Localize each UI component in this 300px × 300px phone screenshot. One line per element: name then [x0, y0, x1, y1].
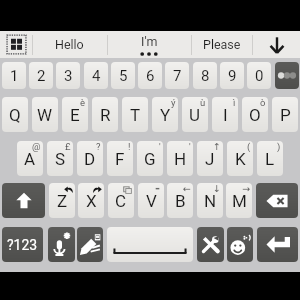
staticText: N — [204, 191, 217, 211]
button[interactable]: 3 — [56, 62, 80, 89]
staticText: 7 — [173, 67, 182, 85]
button[interactable]: R — [92, 97, 118, 132]
staticText: P — [280, 105, 291, 125]
button[interactable]: Hide keyboard — [252, 31, 300, 58]
button[interactable]: Enter — [257, 227, 298, 262]
button[interactable]: G — [137, 141, 163, 176]
button[interactable]: B — [167, 183, 193, 218]
staticText: £ — [65, 141, 71, 152]
button[interactable]: ?123 — [2, 227, 43, 262]
staticText: D — [84, 149, 96, 169]
button[interactable]: Hello — [32, 31, 107, 58]
staticText: @ — [32, 141, 41, 152]
button[interactable]: V — [138, 183, 164, 218]
button[interactable]: 1 — [2, 62, 26, 89]
staticText: 3 — [64, 67, 73, 85]
staticText: è — [80, 97, 86, 108]
button[interactable]: Z — [49, 183, 75, 218]
button[interactable]: 6 — [138, 62, 162, 89]
staticText: X — [86, 191, 97, 211]
staticText: 0 — [255, 67, 264, 85]
button[interactable]: 9 — [220, 62, 244, 89]
button[interactable]: C — [108, 183, 134, 218]
button[interactable]: A — [17, 141, 43, 176]
staticText: Q — [9, 105, 21, 125]
staticText: ? — [96, 141, 101, 152]
staticText: Y — [160, 105, 171, 125]
button[interactable]: 8 — [193, 62, 217, 89]
staticText: A — [24, 149, 36, 169]
button[interactable]: U — [182, 97, 208, 132]
staticText: ò — [260, 97, 266, 108]
staticText: ?123 — [7, 237, 38, 253]
staticText: B — [175, 191, 186, 211]
staticText: ' — [159, 141, 161, 152]
staticText: U — [189, 105, 201, 125]
staticText: T — [130, 105, 141, 125]
staticText: ! — [128, 141, 131, 152]
staticText: 1 — [10, 67, 19, 85]
staticText: → — [242, 183, 250, 194]
button[interactable]: N — [197, 183, 223, 218]
button[interactable]: Backspace — [256, 183, 298, 218]
staticText: W — [37, 105, 53, 125]
staticText: ( — [247, 141, 251, 152]
staticText: E — [70, 105, 80, 125]
button[interactable]: I'm — [107, 31, 191, 58]
button[interactable]: Voice input — [48, 227, 75, 262]
button[interactable]: Please — [191, 31, 252, 58]
button[interactable]: 0 — [247, 62, 271, 89]
button[interactable]: Shift — [2, 183, 45, 218]
button[interactable]: K — [227, 141, 253, 176]
staticText: ý — [171, 97, 176, 108]
staticText: M — [232, 191, 247, 211]
button[interactable]: D — [77, 141, 103, 176]
button[interactable]: Space — [107, 227, 193, 262]
button[interactable]: Emoji — [227, 227, 253, 262]
staticText: ì — [233, 97, 236, 108]
button[interactable]: 5 — [111, 62, 135, 89]
button[interactable]: J — [197, 141, 223, 176]
button[interactable]: L — [257, 141, 283, 176]
button[interactable]: 7 — [165, 62, 189, 89]
staticText: ↓ — [213, 183, 221, 194]
staticText: F — [115, 149, 125, 169]
button[interactable]: Q — [2, 97, 28, 132]
button[interactable]: Y — [152, 97, 178, 132]
button[interactable]: 2 — [29, 62, 53, 89]
staticText: L — [265, 149, 275, 169]
button[interactable]: Handwriting — [77, 227, 103, 262]
button[interactable]: O — [242, 97, 268, 132]
staticText: C — [115, 191, 127, 211]
staticText: O — [249, 105, 261, 125]
staticText: 5 — [119, 67, 128, 85]
staticText: K — [235, 149, 246, 169]
button[interactable]: Settings — [197, 227, 224, 262]
staticText: 6 — [146, 67, 155, 85]
staticText: 2 — [37, 67, 46, 85]
button[interactable]: X — [78, 183, 104, 218]
staticText: G — [144, 149, 156, 169]
button[interactable]: I — [212, 97, 238, 132]
button[interactable]: P — [272, 97, 298, 132]
staticText: 9 — [228, 67, 237, 85]
button[interactable]: Keyboard layout — [0, 31, 32, 58]
button[interactable]: F — [107, 141, 133, 176]
staticText: R — [100, 105, 111, 125]
button[interactable]: H — [167, 141, 193, 176]
button[interactable]: 4 — [84, 62, 108, 89]
staticText: I — [223, 105, 228, 125]
staticText: Please — [203, 37, 241, 52]
button[interactable]: T — [122, 97, 148, 132]
staticText: ) — [277, 141, 281, 152]
staticText: H — [174, 149, 187, 169]
button[interactable]: M — [226, 183, 252, 218]
staticText: 8 — [201, 67, 210, 85]
button[interactable]: S — [47, 141, 73, 176]
button[interactable]: More — [275, 62, 299, 89]
staticText: S — [55, 149, 66, 169]
button[interactable]: E — [62, 97, 88, 132]
staticText: ' — [189, 141, 191, 152]
button[interactable]: W — [32, 97, 58, 132]
staticText: ↑ — [213, 141, 221, 152]
